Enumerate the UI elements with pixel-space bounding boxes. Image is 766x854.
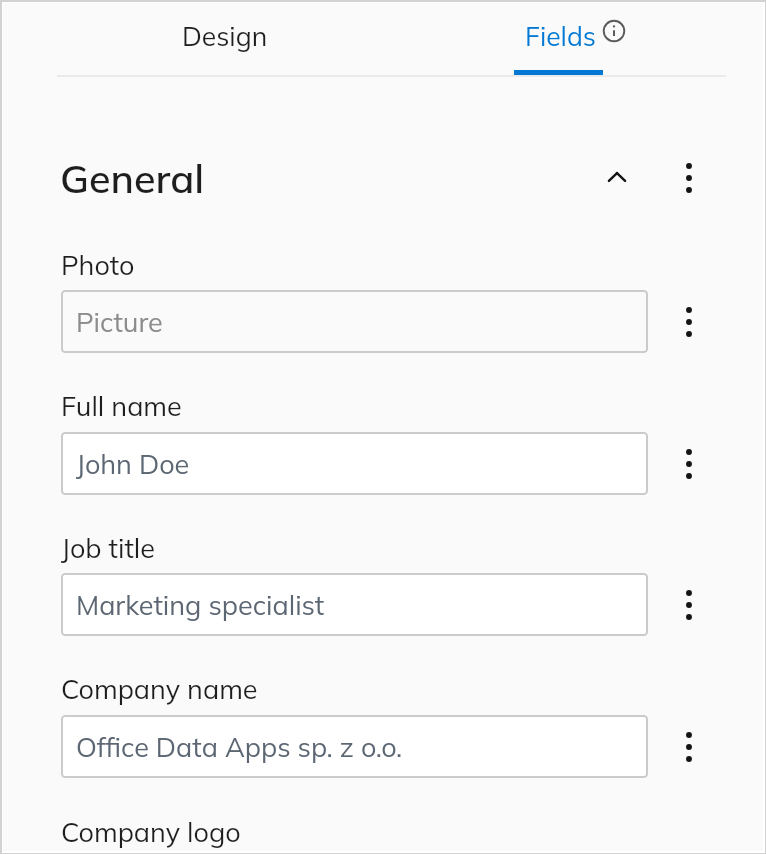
staticText: Photo bbox=[61, 248, 135, 282]
button[interactable]: More options for Photo bbox=[663, 296, 715, 348]
staticText: Fields bbox=[525, 19, 596, 52]
button[interactable]: General section options bbox=[663, 152, 715, 204]
button[interactable]: More options for Job title bbox=[663, 579, 715, 631]
staticText: Job title bbox=[61, 531, 155, 565]
staticText: General bbox=[60, 153, 205, 203]
staticText: Marketing specialist bbox=[76, 588, 325, 622]
staticText: Company logo bbox=[61, 815, 241, 849]
button[interactable]: Office Data Apps sp. z o.o. bbox=[61, 715, 648, 778]
button[interactable]: More options for Company name bbox=[663, 721, 715, 773]
button[interactable]: About the Fields tab bbox=[592, 9, 636, 53]
button[interactable]: Picture bbox=[61, 290, 648, 353]
staticText: Design bbox=[182, 19, 268, 52]
button[interactable]: More options for Full name bbox=[663, 438, 715, 490]
staticText: Full name bbox=[61, 389, 182, 423]
button[interactable]: John Doe bbox=[61, 432, 648, 495]
staticText: Company name bbox=[61, 672, 258, 706]
button[interactable]: Marketing specialist bbox=[61, 573, 648, 636]
button[interactable]: Design bbox=[84, 2, 364, 75]
button[interactable]: Fields bbox=[419, 2, 699, 75]
staticText: Office Data Apps sp. z o.o. bbox=[76, 730, 403, 764]
staticText: John Doe bbox=[76, 447, 190, 481]
button[interactable]: Collapse General section bbox=[591, 151, 643, 203]
staticText: Picture bbox=[76, 305, 163, 339]
